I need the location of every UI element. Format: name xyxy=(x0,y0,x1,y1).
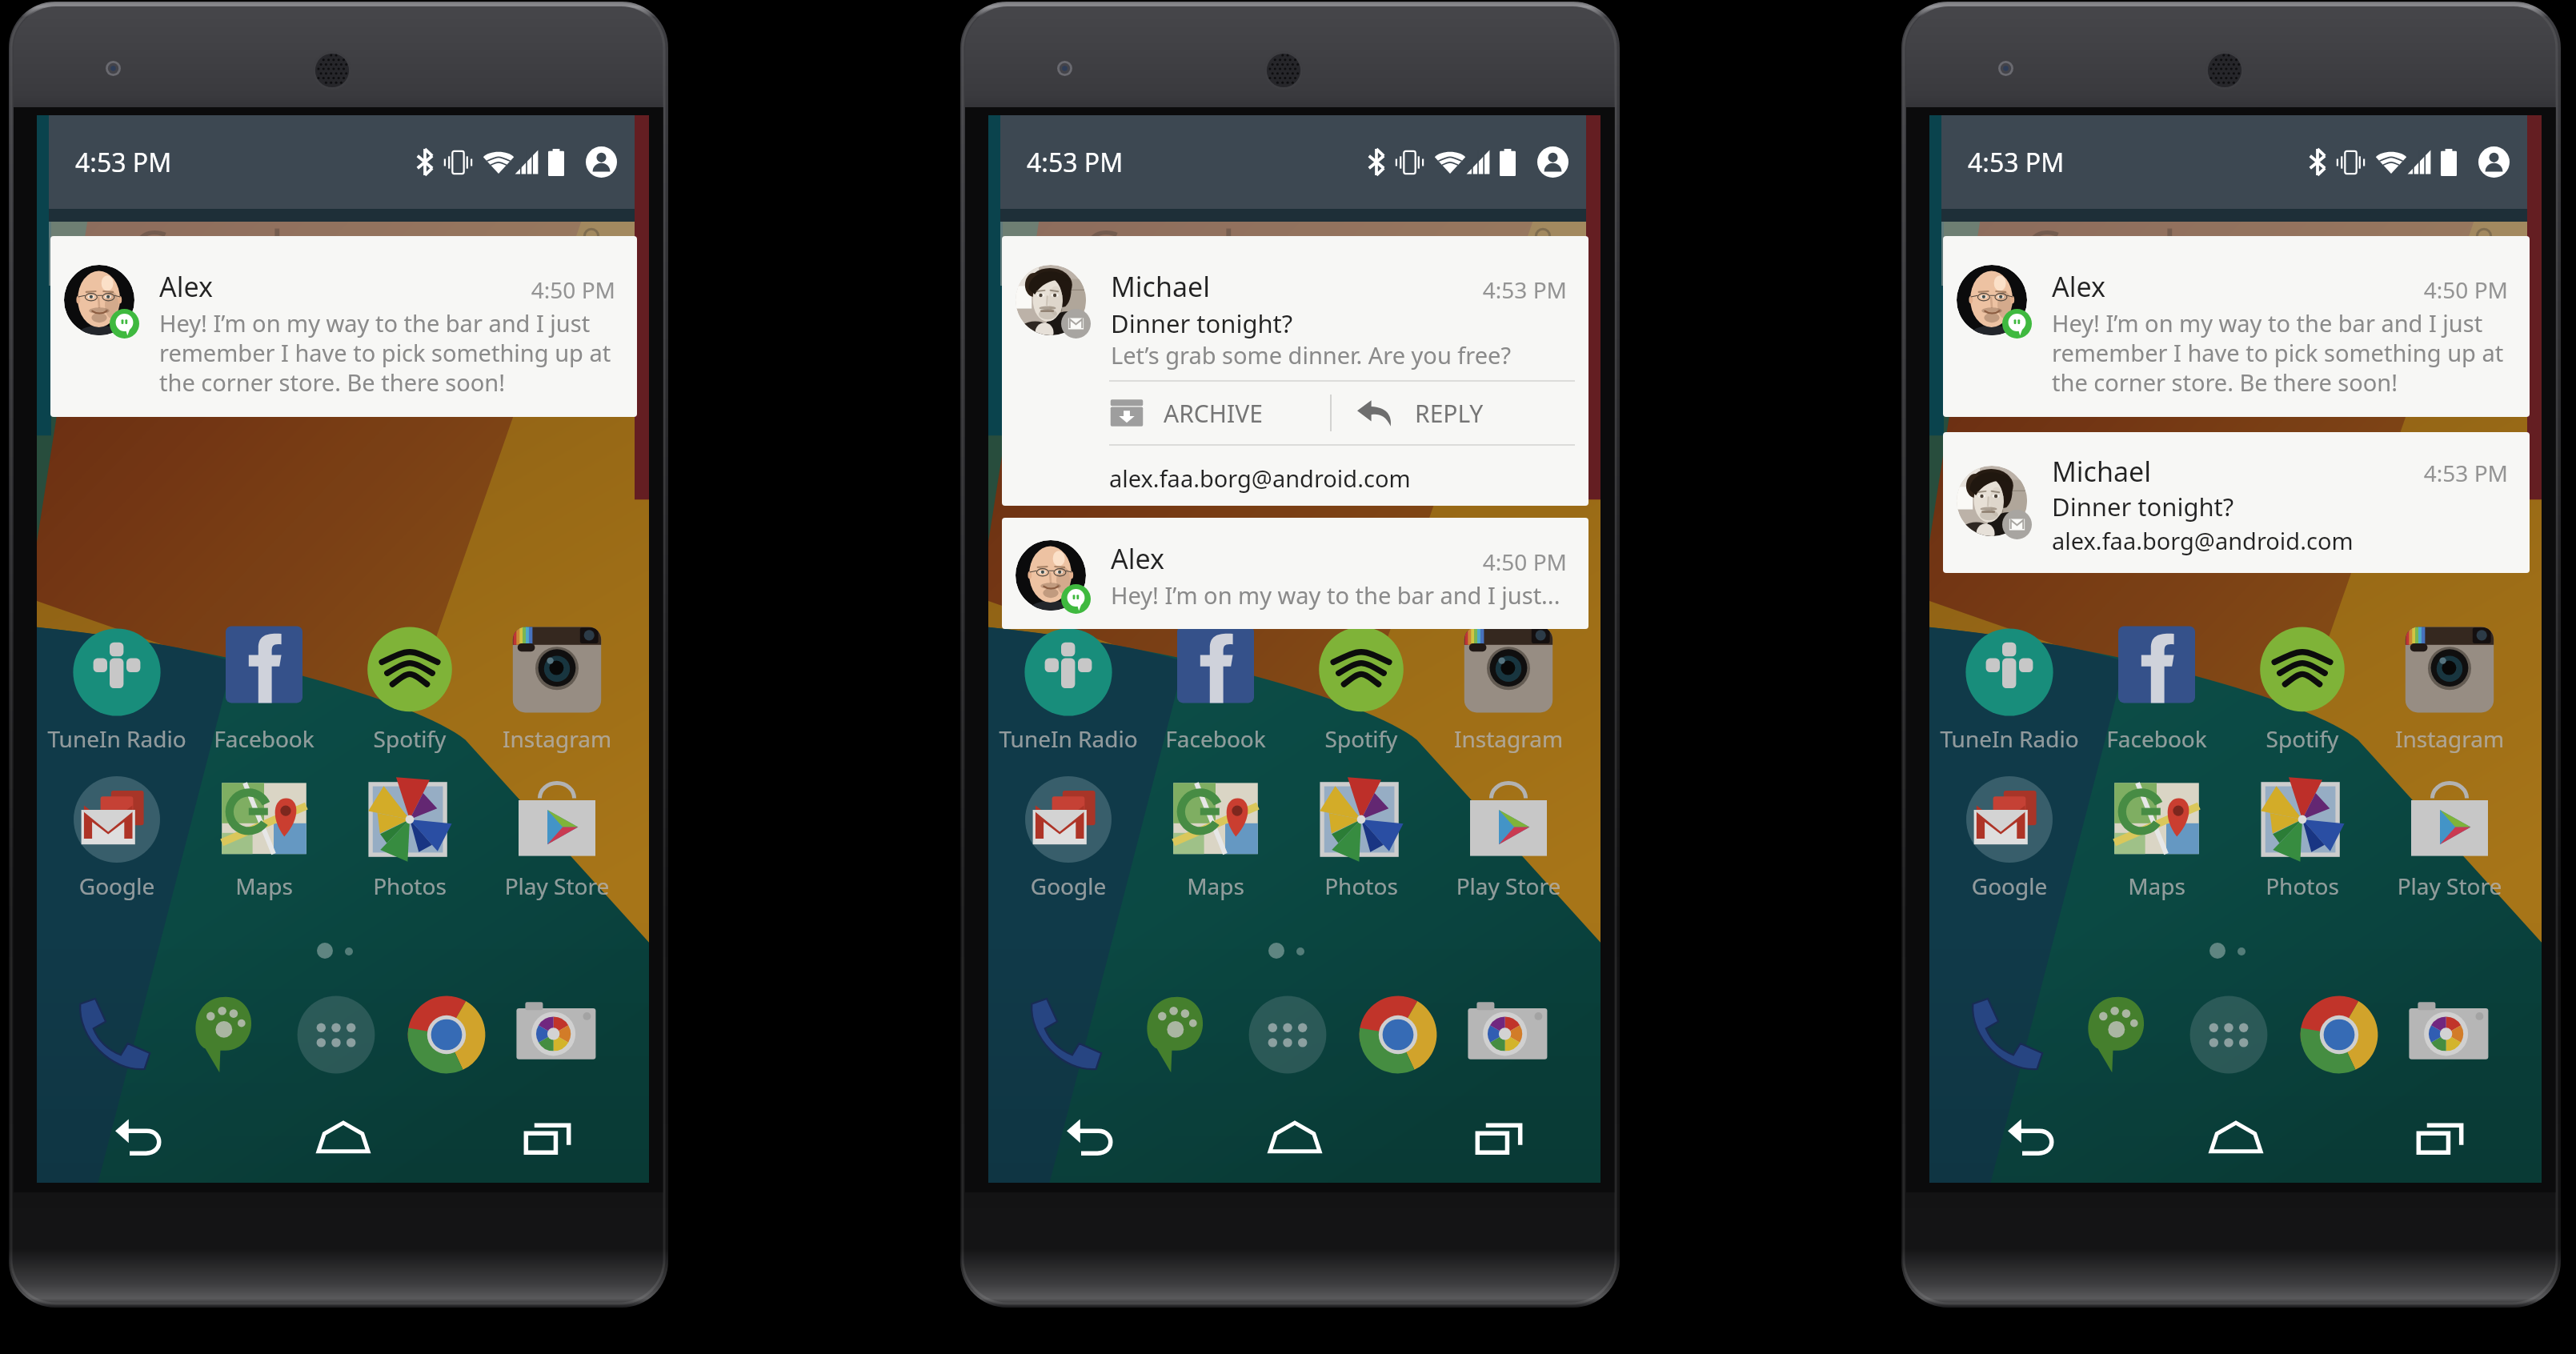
button[interactable]: Chrome xyxy=(2295,991,2383,1079)
staticText: Facebook xyxy=(2083,723,2230,754)
button[interactable]: Back xyxy=(1929,1093,2133,1183)
staticText: Let’s grab some dinner. Are you free? xyxy=(1111,339,1512,371)
staticText: 4:53 PM xyxy=(1968,145,2065,180)
staticText: 4:50 PM xyxy=(503,274,615,305)
staticText: Spotify xyxy=(336,723,483,754)
staticText: Spotify xyxy=(2229,723,2376,754)
staticText: Maps xyxy=(2083,871,2230,901)
button[interactable]: Maps xyxy=(1142,771,1289,901)
staticText: Alex xyxy=(159,268,213,305)
staticText: Google xyxy=(2024,211,2208,275)
button[interactable]: Instagram xyxy=(483,624,631,754)
button[interactable]: Spotify xyxy=(2229,624,2376,754)
button[interactable]: Play Store xyxy=(483,771,631,901)
button[interactable]: Facebook xyxy=(190,624,338,754)
staticText: Play Store xyxy=(483,871,631,901)
staticText: Alex xyxy=(1111,540,1164,577)
button[interactable]: TuneIn Radio xyxy=(1936,624,2083,754)
staticText: Spotify xyxy=(1288,723,1435,754)
staticText: 4:53 PM xyxy=(75,145,172,180)
staticText: TuneIn Radio xyxy=(995,723,1142,754)
button[interactable]: Play Store xyxy=(2376,771,2523,901)
staticText: Michael xyxy=(1111,268,1210,305)
button[interactable]: Facebook xyxy=(2083,624,2230,754)
staticText: TuneIn Radio xyxy=(1936,723,2083,754)
button[interactable]: Alex xyxy=(1002,518,1588,629)
button[interactable]: Messenger xyxy=(1133,991,1221,1079)
button[interactable]: Michael xyxy=(1943,432,2530,573)
staticText: Google xyxy=(995,871,1142,901)
button[interactable]: Photos xyxy=(1288,771,1435,901)
button[interactable]: Camera xyxy=(2406,991,2494,1079)
button[interactable]: Spotify xyxy=(1288,624,1435,754)
staticText: Michael xyxy=(2052,453,2151,490)
staticText: Instagram xyxy=(1435,723,1582,754)
button[interactable]: Chrome xyxy=(403,991,491,1079)
button[interactable]: Switch user xyxy=(2478,146,2510,178)
staticText: 4:53 PM xyxy=(1027,145,1124,180)
staticText: Photos xyxy=(336,871,483,901)
button[interactable]: Messenger xyxy=(2074,991,2162,1079)
button[interactable]: Photos xyxy=(336,771,483,901)
button[interactable]: Home xyxy=(241,1093,445,1183)
button[interactable]: Chrome xyxy=(1354,991,1442,1079)
button[interactable]: Maps xyxy=(2083,771,2230,901)
button[interactable]: Maps xyxy=(190,771,338,901)
button[interactable]: Facebook xyxy=(1142,624,1289,754)
staticText: Google xyxy=(131,211,315,275)
button[interactable]: Google xyxy=(49,222,635,286)
staticText: Hey! I’m on my way to the bar and I just… xyxy=(1111,579,1560,611)
staticText: TuneIn Radio xyxy=(43,723,190,754)
button[interactable]: Switch user xyxy=(586,146,617,178)
button[interactable]: Phone xyxy=(1961,991,2049,1079)
staticText: REPLY xyxy=(1415,397,1484,430)
button[interactable]: Back xyxy=(988,1093,1192,1183)
button[interactable]: TuneIn Radio xyxy=(43,624,190,754)
staticText: ARCHIVE xyxy=(1164,397,1263,430)
button[interactable]: Recents xyxy=(445,1093,649,1183)
button[interactable]: Camera xyxy=(1464,991,1552,1079)
button[interactable]: REPLY xyxy=(1357,382,1575,444)
button[interactable]: Messenger xyxy=(182,991,270,1079)
button[interactable]: Michael xyxy=(1002,236,1588,506)
button[interactable]: Google xyxy=(43,771,190,901)
button[interactable]: Alex xyxy=(1943,236,2530,417)
button[interactable]: TuneIn Radio xyxy=(995,624,1142,754)
staticText: Play Store xyxy=(2376,871,2523,901)
staticText: Google xyxy=(1083,211,1267,275)
button[interactable]: Switch user xyxy=(1537,146,1568,178)
button[interactable]: Recents xyxy=(2338,1093,2542,1183)
staticText: alex.faa.borg@android.com xyxy=(1109,463,1411,494)
button[interactable]: ARCHIVE xyxy=(1109,382,1575,444)
button[interactable]: Google xyxy=(1941,222,2527,286)
button[interactable]: Phone xyxy=(69,991,157,1079)
button[interactable]: Instagram xyxy=(2376,624,2523,754)
button[interactable]: Photos xyxy=(2229,771,2376,901)
button[interactable]: Back xyxy=(37,1093,241,1183)
button[interactable]: Recents xyxy=(1396,1093,1600,1183)
staticText: 4:50 PM xyxy=(1455,547,1567,577)
staticText: Instagram xyxy=(483,723,631,754)
staticText: Photos xyxy=(2229,871,2376,901)
button[interactable]: All apps xyxy=(2185,991,2273,1079)
staticText: Hey! I’m on my way to the bar and I just… xyxy=(159,307,611,399)
button[interactable]: Camera xyxy=(513,991,601,1079)
button[interactable]: Home xyxy=(2133,1093,2338,1183)
staticText: 4:50 PM xyxy=(2396,274,2508,305)
button[interactable]: Alex xyxy=(50,236,637,417)
button[interactable]: Phone xyxy=(1020,991,1108,1079)
button[interactable]: Play Store xyxy=(1435,771,1582,901)
staticText: Maps xyxy=(190,871,338,901)
button[interactable]: All apps xyxy=(292,991,380,1079)
button[interactable]: Home xyxy=(1192,1093,1396,1183)
staticText: Alex xyxy=(2052,268,2105,305)
staticText: Instagram xyxy=(2376,723,2523,754)
staticText: Maps xyxy=(1142,871,1289,901)
button[interactable]: Google xyxy=(995,771,1142,901)
button[interactable]: Google xyxy=(1936,771,2083,901)
button[interactable]: Instagram xyxy=(1435,624,1582,754)
staticText: alex.faa.borg@android.com xyxy=(2052,525,2354,556)
button[interactable]: All apps xyxy=(1244,991,1332,1079)
button[interactable]: Google xyxy=(1000,222,1586,286)
button[interactable]: Spotify xyxy=(336,624,483,754)
